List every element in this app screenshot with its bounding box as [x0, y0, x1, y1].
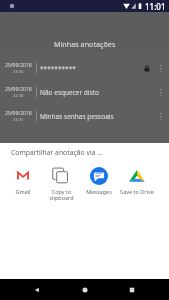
staticText: Minhas anotações: [54, 39, 116, 49]
staticText: Compartilhar anotação via ...: [11, 148, 103, 157]
staticText: 25/09/2018: [5, 110, 32, 117]
button[interactable]: 25/09/2018: [0, 104, 169, 128]
staticText: Copy to clipboard: [49, 188, 74, 202]
staticText: Gmail: [15, 188, 31, 195]
button[interactable]: More options: [154, 56, 169, 80]
button[interactable]: 25/09/2018: [0, 56, 169, 80]
button[interactable]: Locked note: [140, 56, 154, 80]
staticText: **********: [40, 64, 140, 73]
staticText: Não esquecer disto: [40, 88, 140, 97]
staticText: 22:38: [13, 93, 24, 98]
button[interactable]: Save to Drive: [118, 167, 156, 195]
button[interactable]: Back: [27, 280, 47, 300]
staticText: 23:00: [13, 69, 24, 74]
staticText: Minhas senhas pessoais: [40, 112, 140, 121]
button[interactable]: Home: [75, 280, 95, 300]
staticText: 11:01: [145, 1, 166, 12]
button[interactable]: 25/09/2018: [0, 80, 169, 104]
staticText: Save to Drive: [120, 188, 154, 195]
staticText: 25/09/2018: [5, 62, 32, 69]
staticText: 25/09/2018: [5, 86, 32, 93]
button[interactable]: Copy to clipboard: [42, 167, 80, 202]
button[interactable]: Gmail: [4, 167, 42, 195]
button[interactable]: Messages: [80, 167, 118, 195]
button[interactable]: More options: [154, 80, 169, 104]
button[interactable]: Recents: [122, 280, 142, 300]
button[interactable]: More options: [154, 104, 169, 128]
staticText: 23:37: [13, 117, 24, 122]
staticText: Messages: [86, 188, 112, 195]
